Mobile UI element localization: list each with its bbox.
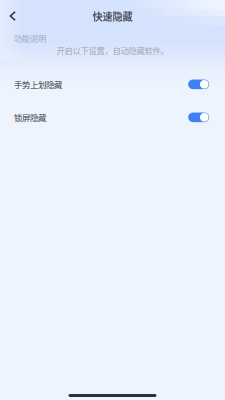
staticText: 开启以下设置，自动隐藏软件。 xyxy=(56,44,168,56)
button[interactable]: Back xyxy=(0,3,16,29)
button[interactable]: 锁屏隐藏 xyxy=(0,101,225,134)
staticText: 锁屏隐藏 xyxy=(14,111,46,123)
staticText: 手势上划隐藏 xyxy=(14,78,62,90)
staticText: 功能说明 xyxy=(14,32,46,44)
button[interactable]: 手势上划隐藏 xyxy=(0,68,225,101)
staticText: 快速隐藏 xyxy=(92,9,132,23)
